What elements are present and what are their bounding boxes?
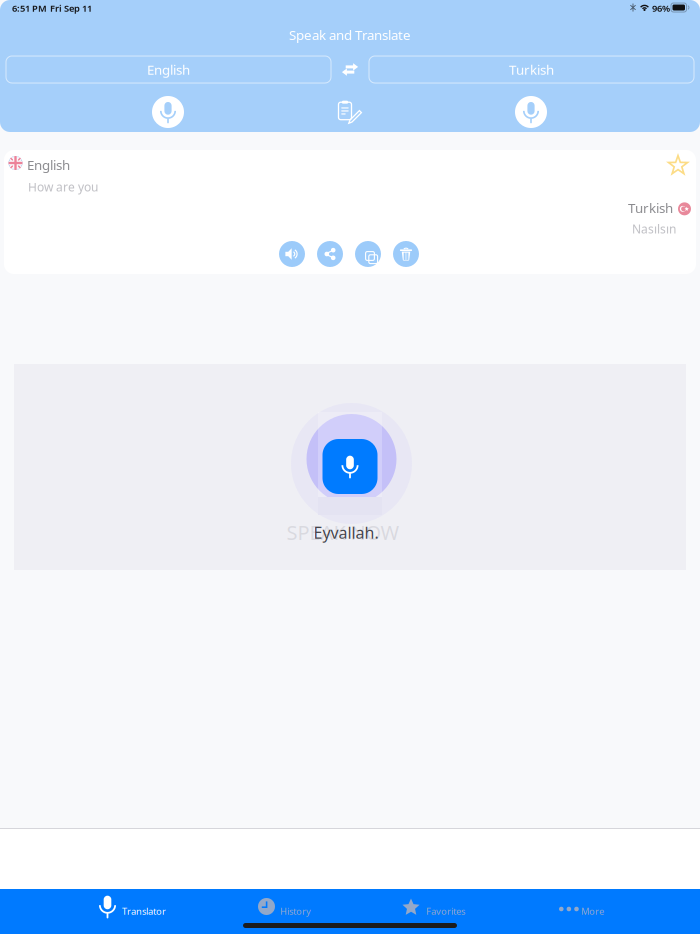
- staticText: English: [147, 61, 190, 78]
- staticText: SPEAK NOW: [286, 519, 399, 546]
- staticText: More: [581, 905, 604, 917]
- staticText: Eyvallah.: [313, 522, 378, 543]
- button[interactable]: Speak English: [148, 92, 188, 132]
- button[interactable]: Speak Turkish: [511, 92, 551, 132]
- button[interactable]: Translator: [99, 895, 168, 925]
- staticText: Turkish: [509, 61, 554, 78]
- staticText: History: [280, 905, 311, 917]
- button[interactable]: Speak translation: [279, 241, 305, 267]
- staticText: Speak and Translate: [289, 26, 411, 44]
- staticText: Favorites: [426, 905, 465, 917]
- button[interactable]: Favorites: [402, 895, 472, 925]
- button[interactable]: Swap languages: [331, 56, 369, 83]
- staticText: English: [27, 156, 70, 174]
- button[interactable]: Share: [317, 241, 343, 267]
- button[interactable]: Copy: [355, 241, 381, 267]
- staticText: Fri Sep 11: [50, 2, 92, 14]
- staticText: Nasılsın: [632, 221, 676, 237]
- button[interactable]: History: [258, 895, 326, 925]
- staticText: 6:51 PM: [12, 2, 47, 14]
- staticText: Turkish: [628, 199, 673, 217]
- staticText: How are you: [28, 179, 98, 195]
- staticText: Translator: [122, 905, 166, 917]
- button[interactable]: Turkish: [369, 56, 694, 83]
- button[interactable]: English: [6, 56, 331, 83]
- button[interactable]: Delete: [393, 241, 419, 267]
- button[interactable]: Add to favorites: [664, 152, 692, 178]
- button[interactable]: Type text: [330, 92, 370, 132]
- button[interactable]: More: [559, 895, 627, 925]
- staticText: 96%: [652, 2, 670, 14]
